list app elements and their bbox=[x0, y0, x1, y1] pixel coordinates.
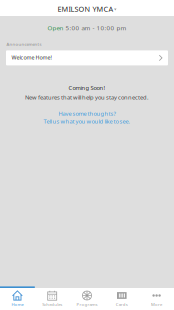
button[interactable]: Have some thoughts? bbox=[0, 110, 174, 125]
staticText: More bbox=[151, 301, 162, 307]
button[interactable]: Cards bbox=[104, 288, 139, 310]
staticText: Programs bbox=[76, 301, 97, 307]
staticText: Welcome Home! bbox=[11, 54, 51, 61]
staticText: New features that will help you stay con… bbox=[25, 93, 149, 101]
button[interactable]: Programs bbox=[70, 288, 104, 310]
button[interactable]: Welcome Home! bbox=[6, 50, 168, 65]
button[interactable]: Schedules bbox=[35, 288, 70, 310]
staticText: Cards bbox=[116, 301, 128, 307]
staticText: Open bbox=[47, 24, 63, 32]
button[interactable]: More bbox=[139, 288, 174, 310]
staticText: Announcements bbox=[6, 41, 41, 47]
staticText: 5:00 am - 10:00 pm bbox=[63, 24, 126, 32]
staticText: Coming Soon! bbox=[68, 84, 105, 92]
staticText: Schedules bbox=[42, 301, 62, 307]
staticText: Home bbox=[11, 301, 23, 307]
button[interactable]: EMILSON YMCA bbox=[0, 0, 174, 16]
staticText: EMILSON YMCA bbox=[57, 4, 113, 14]
staticText: Have some thoughts? bbox=[58, 110, 115, 117]
staticText: Tell us what you would like to see. bbox=[43, 117, 130, 125]
button[interactable]: Home bbox=[0, 288, 35, 310]
